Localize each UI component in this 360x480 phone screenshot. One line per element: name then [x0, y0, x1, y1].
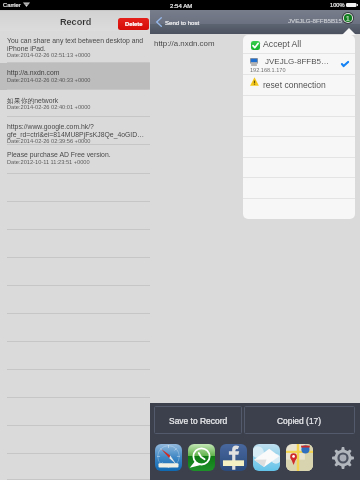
staticText: Date:2014-02-26 02:51:13 +0000 [7, 52, 91, 58]
button[interactable]: Copied (17) [244, 406, 355, 434]
button[interactable]: WhatsApp [188, 444, 215, 471]
button[interactable]: Maps [286, 444, 313, 471]
staticText: Send to host [165, 19, 200, 26]
staticText: Date:2014-02-26 02:39:56 +0000 [7, 138, 91, 144]
staticText: 2:54 AM [170, 2, 193, 9]
staticText: 1 [346, 15, 350, 22]
staticText: https://www.google.com.hk/?gfe_rd=ctrl&e… [7, 123, 146, 138]
button[interactable]: Accept All [243, 35, 355, 54]
button[interactable]: Connection status [342, 12, 354, 24]
button[interactable]: http://a.nxdn.com [0, 63, 150, 90]
staticText: 192.168.1.170 [250, 67, 286, 73]
staticText: JVEJLG-8FFB5… [265, 57, 330, 66]
button[interactable]: JVEJLG-8FFB5… [243, 54, 355, 75]
button[interactable]: You can share any text between desktop a… [0, 31, 150, 63]
staticText: JVEJLG-8FFB5B15 [288, 17, 342, 24]
staticText: Copied (17) [277, 416, 322, 425]
button[interactable]: Settings [332, 447, 354, 469]
button[interactable]: https://www.google.com.hk/?gfe_rd=ctrl&e… [0, 117, 150, 145]
staticText: Accept All [263, 39, 302, 49]
button[interactable]: 如果你的network [0, 90, 150, 117]
staticText: Save to Record [169, 416, 228, 425]
staticText: 如果你的network [7, 96, 146, 105]
staticText: You can share any text between desktop a… [7, 37, 146, 52]
staticText: Carrier [3, 2, 21, 8]
staticText: Record [60, 17, 92, 27]
button[interactable]: Please purchase AD Free version. [0, 145, 150, 174]
staticText: Date:2012-10-11 11:23:51 +0000 [7, 159, 90, 165]
button[interactable]: Safari [155, 444, 182, 471]
staticText: Please purchase AD Free version. [7, 151, 146, 159]
button[interactable]: Delete [118, 18, 149, 30]
staticText: Delete [125, 21, 143, 27]
button[interactable]: Facebook Feed [220, 444, 247, 471]
button[interactable]: reset connection [243, 75, 355, 96]
staticText: 100% [330, 2, 345, 8]
staticText: Date:2014-02-26 02:40:33 +0000 [7, 77, 91, 83]
button[interactable]: Save to Record [154, 406, 242, 434]
button[interactable]: Mail [253, 444, 280, 471]
button[interactable]: Send to host [156, 17, 200, 27]
staticText: http://a.nxdn.com [7, 69, 146, 77]
staticText: http://a.nxdn.com [154, 39, 215, 48]
staticText: reset connection [263, 80, 326, 90]
staticText: Date:2014-02-26 02:40:01 +0000 [7, 104, 91, 110]
